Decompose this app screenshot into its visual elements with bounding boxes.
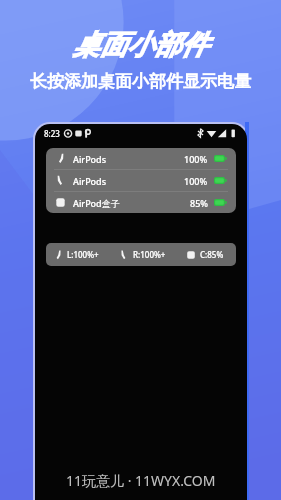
staticText: 85% xyxy=(190,197,208,209)
staticText: 100% xyxy=(184,175,208,187)
button[interactable]: Left earbud xyxy=(53,249,112,260)
staticText: AirPods xyxy=(73,175,107,187)
staticText: AirPod盒子 xyxy=(73,197,120,209)
staticText: L:100%+ xyxy=(67,249,99,260)
other: Battery level xyxy=(214,155,227,162)
button[interactable]: Charging case xyxy=(186,249,236,260)
other: Battery level xyxy=(214,177,227,184)
button[interactable]: Left earbud xyxy=(55,148,227,169)
button[interactable]: Left earbud xyxy=(46,243,236,266)
button[interactable]: Right earbud xyxy=(55,170,227,191)
staticText: 8:23 xyxy=(44,128,60,139)
staticText: AirPods xyxy=(73,153,107,165)
staticText: 100% xyxy=(184,153,208,165)
other: Right earbud xyxy=(119,250,129,260)
staticText: C:85% xyxy=(200,249,224,260)
staticText: 长按添加桌面小部件显示电量 xyxy=(30,71,251,92)
other: Left earbud xyxy=(53,250,63,260)
other: Charging case xyxy=(55,197,66,208)
button[interactable]: Right earbud xyxy=(119,249,179,260)
other: Right earbud xyxy=(55,175,66,186)
button[interactable]: Charging case xyxy=(55,192,227,213)
staticText: 11玩意儿 · 11WYX.COM xyxy=(66,471,216,490)
staticText: 桌面小部件 xyxy=(73,28,208,62)
other: Battery level xyxy=(214,199,227,206)
other: Left earbud xyxy=(55,153,66,164)
button[interactable]: Left earbud xyxy=(46,148,236,213)
staticText: R:100%+ xyxy=(133,249,166,260)
other: Charging case xyxy=(186,250,196,260)
